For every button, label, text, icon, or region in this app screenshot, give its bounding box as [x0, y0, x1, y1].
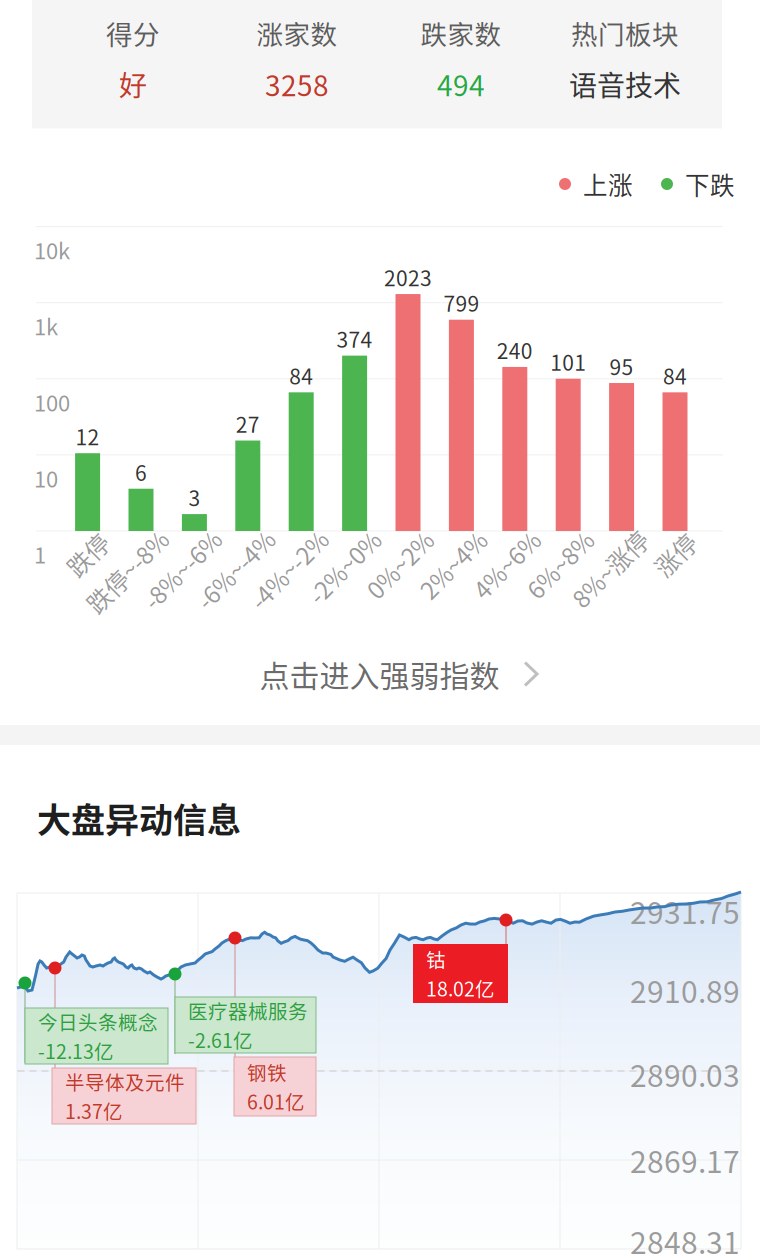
- staticText: 跌停: [64, 537, 112, 572]
- staticText: 上涨: [583, 166, 633, 202]
- staticText: 3: [188, 482, 200, 512]
- staticText: 半导体及元件: [65, 1067, 185, 1095]
- staticText: 跌停~-8%: [75, 554, 179, 588]
- staticText: 8%~涨停: [562, 551, 658, 586]
- staticText: 374: [337, 323, 373, 354]
- staticText: 6: [135, 456, 147, 487]
- staticText: 27: [236, 408, 260, 439]
- staticText: 2869.17: [630, 1138, 740, 1182]
- staticText: 下跌: [685, 166, 735, 202]
- staticText: 4%~6%: [465, 547, 548, 582]
- staticText: 12: [76, 421, 100, 451]
- staticText: 84: [289, 360, 313, 390]
- staticText: 95: [610, 351, 634, 381]
- staticText: 2931.75: [630, 889, 740, 933]
- staticText: -8%~-6%: [132, 552, 231, 587]
- staticText: 799: [443, 287, 479, 318]
- staticText: 2023: [384, 262, 432, 292]
- staticText: 10k: [34, 234, 70, 266]
- staticText: 好: [119, 64, 147, 104]
- staticText: 2890.03: [630, 1052, 740, 1096]
- staticText: -2%~0%: [299, 549, 390, 584]
- staticText: 跌家数: [420, 14, 501, 52]
- staticText: 语音技术: [569, 64, 681, 104]
- staticText: 点击进入强弱指数: [259, 652, 499, 696]
- staticText: -2.61亿: [188, 1025, 253, 1054]
- staticText: 1: [34, 538, 46, 570]
- staticText: 2848.31: [630, 1219, 740, 1255]
- staticText: 2%~4%: [412, 547, 495, 582]
- staticText: 涨停: [651, 537, 699, 572]
- staticText: 1k: [34, 310, 58, 342]
- staticText: 0%~2%: [358, 547, 441, 582]
- staticText: 热门板块: [571, 14, 679, 52]
- staticText: 钢铁: [247, 1058, 287, 1086]
- staticText: 240: [497, 335, 533, 365]
- staticText: 2910.89: [630, 968, 740, 1012]
- staticText: 18.02亿: [426, 974, 495, 1002]
- staticText: 3258: [265, 64, 329, 104]
- staticText: 大盘异动信息: [37, 793, 241, 843]
- staticText: -4%~-2%: [239, 552, 338, 587]
- staticText: 得分: [106, 14, 160, 52]
- button[interactable]: 点击进入强弱指数: [259, 642, 538, 706]
- staticText: -6%~-4%: [186, 552, 285, 587]
- staticText: 6%~8%: [518, 547, 601, 582]
- staticText: 10: [34, 462, 58, 494]
- staticText: 101: [550, 346, 586, 377]
- staticText: 84: [663, 360, 687, 390]
- staticText: 涨家数: [256, 14, 337, 52]
- staticText: 钴: [426, 945, 446, 973]
- staticText: 医疗器械服务: [188, 996, 308, 1024]
- staticText: 494: [437, 64, 485, 104]
- staticText: 6.01亿: [247, 1087, 305, 1115]
- staticText: 今日头条概念: [38, 1007, 158, 1035]
- staticText: -12.13亿: [38, 1036, 114, 1065]
- staticText: 1.37亿: [65, 1096, 123, 1125]
- staticText: 100: [34, 386, 70, 418]
